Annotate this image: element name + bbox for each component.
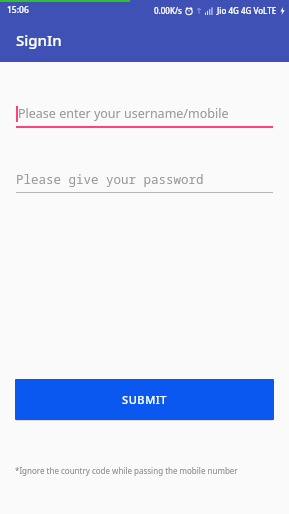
button[interactable]: SUBMIT <box>15 379 274 420</box>
staticText: *Ignore the country code while passing t… <box>15 465 274 476</box>
staticText: SUBMIT <box>122 392 168 407</box>
staticText: Please enter your username/mobile <box>18 105 229 122</box>
staticText: 15:06 <box>7 4 29 16</box>
button[interactable]: Please enter your username/mobile <box>16 105 273 128</box>
staticText: 0.00K/s <box>154 5 182 16</box>
staticText: SignIn <box>16 30 62 50</box>
staticText: Jio 4G 4G VoLTE <box>217 5 277 16</box>
staticText: Please give your password <box>16 171 204 188</box>
button[interactable]: Please give your password <box>16 171 273 193</box>
